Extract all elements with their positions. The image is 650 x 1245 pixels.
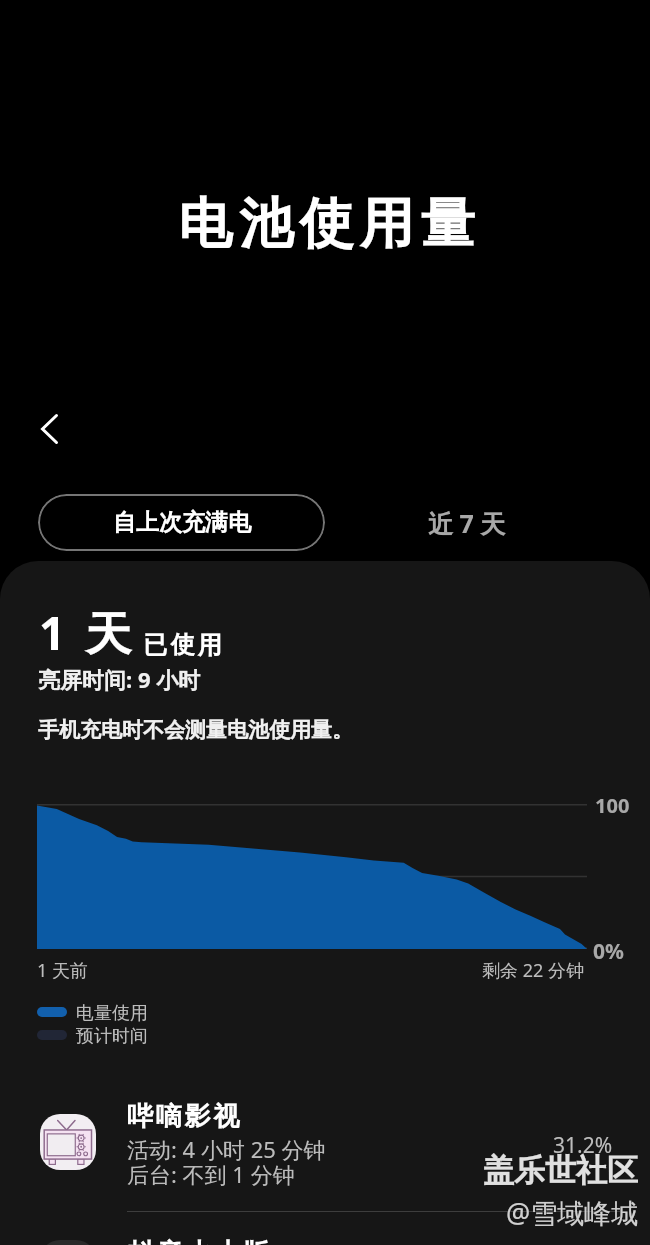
staticText: 1 天 — [39, 601, 136, 664]
staticText: 近 7 天 — [428, 506, 506, 540]
staticText: 盖乐世社区 — [483, 1151, 638, 1190]
staticText: 抖音火山版 — [127, 1237, 271, 1245]
staticText: 哔嘀影视 — [127, 1100, 243, 1133]
staticText: 已使用 — [142, 630, 223, 660]
button[interactable]: 抖音火山版 — [0, 1219, 650, 1245]
staticText: 剩余 22 分钟 — [482, 958, 584, 983]
staticText: 亮屏时间: 9 小时 — [38, 664, 201, 694]
button[interactable]: 近 7 天 — [422, 494, 512, 551]
staticText: @雪域峰城 — [506, 1194, 639, 1231]
button[interactable]: 自上次充满电 — [38, 494, 325, 551]
staticText: 电量使用 — [76, 1002, 148, 1025]
button[interactable]: Back — [21, 400, 78, 457]
staticText: 预计时间 — [76, 1025, 148, 1048]
staticText: 后台: 不到 1 分钟 — [127, 1159, 295, 1189]
staticText: 电池使用量 — [175, 190, 478, 258]
staticText: 自上次充满电 — [113, 508, 251, 537]
staticText: 31.2% — [553, 1131, 613, 1160]
staticText: 活动: 4 小时 25 分钟 — [127, 1134, 326, 1164]
staticText: 100 — [595, 792, 630, 819]
button[interactable]: 哔嘀影视 — [0, 1093, 650, 1197]
staticText: 手机充电时不会测量电池使用量。 — [38, 717, 353, 743]
staticText: 1 天前 — [37, 958, 88, 983]
staticText: 0% — [593, 937, 624, 966]
